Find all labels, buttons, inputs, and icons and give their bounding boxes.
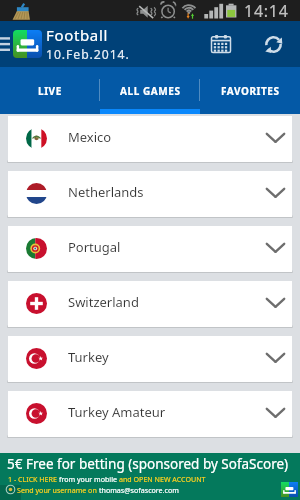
staticText: Turkey Amateur — [68, 403, 166, 421]
staticText: Mexico — [68, 128, 112, 146]
staticText: LIVE — [38, 84, 62, 98]
staticText: 5€ Free for betting (sponsored by SofaSc… — [7, 455, 289, 473]
staticText: Netherlands — [68, 183, 144, 201]
staticText: Football — [46, 25, 108, 45]
button[interactable]: 5€ Free for betting (sponsored by SofaSc… — [0, 453, 300, 500]
staticText: 14:14 — [244, 0, 289, 21]
staticText: ALL GAMES — [120, 84, 181, 98]
staticText: FAVORITES — [221, 84, 280, 98]
staticText: 10.Feb.2014. — [46, 46, 130, 63]
button[interactable]: LIVE — [0, 67, 100, 114]
button[interactable]: FAVORITES — [200, 67, 300, 114]
staticText: Switzerland — [68, 293, 139, 311]
button[interactable]: Open navigation menu — [0, 21, 11, 67]
button[interactable]: Calendar — [205, 28, 237, 60]
staticText: Portugal — [68, 238, 121, 256]
staticText: from your mobile — [59, 474, 119, 484]
button[interactable]: Mexico — [8, 116, 292, 162]
button[interactable]: Netherlands — [8, 171, 292, 217]
staticText: Send your username on — [17, 485, 99, 495]
staticText: and OPEN NEW ACCOUNT — [119, 474, 206, 484]
button[interactable]: ALL GAMES — [100, 67, 200, 114]
staticText: thomas@sofascore.com — [99, 485, 179, 495]
button[interactable]: Portugal — [8, 226, 292, 272]
staticText: 1 - CLICK HERE — [8, 474, 59, 484]
button[interactable]: Switzerland — [8, 281, 292, 327]
staticText: Turkey — [68, 348, 109, 366]
button[interactable]: Turkey Amateur — [8, 391, 292, 437]
button[interactable]: Turkey — [8, 336, 292, 382]
button[interactable]: Refresh — [257, 28, 289, 60]
